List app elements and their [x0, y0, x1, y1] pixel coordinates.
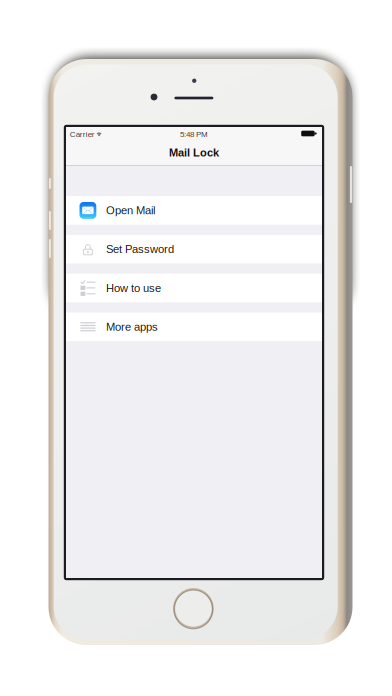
staticText: Set Password [106, 243, 174, 255]
staticText: More apps [106, 320, 158, 333]
staticText: Mail Lock [169, 146, 219, 159]
button[interactable]: More apps [66, 312, 322, 341]
staticText: 5:48 PM [180, 130, 208, 139]
staticText: Open Mail [106, 204, 155, 217]
button[interactable]: Set Password [66, 235, 322, 263]
staticText: How to use [106, 282, 161, 294]
button[interactable]: Open Mail [66, 196, 322, 225]
button[interactable]: How to use [66, 274, 322, 302]
staticText: Carrier [70, 130, 95, 139]
